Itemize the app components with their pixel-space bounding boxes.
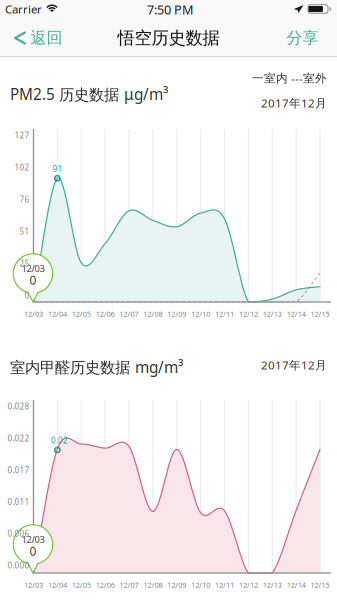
staticText: 51: [19, 226, 29, 237]
staticText: 12/06: [96, 309, 115, 319]
staticText: 76: [19, 194, 29, 205]
staticText: 2017年12月: [261, 357, 327, 373]
staticText: 12/05: [72, 580, 91, 590]
staticText: 0: [29, 543, 36, 559]
staticText: 室内甲醛历史数据 mg/m³: [10, 357, 183, 377]
staticText: 12/08: [143, 309, 162, 319]
staticText: 分享: [286, 28, 318, 48]
staticText: 12/04: [48, 580, 67, 590]
staticText: 12/08: [143, 580, 162, 590]
staticText: 0.006: [7, 528, 29, 539]
staticText: 91: [52, 163, 62, 174]
staticText: 12/09: [167, 580, 186, 590]
staticText: 12/13: [263, 309, 282, 319]
staticText: 12/07: [119, 580, 138, 590]
staticText: 0.017: [7, 465, 29, 476]
staticText: 12/10: [191, 580, 210, 590]
staticText: 0.028: [7, 401, 29, 412]
staticText: 12/14: [287, 580, 306, 590]
staticText: 7:50 PM: [147, 1, 193, 18]
staticText: 25: [19, 258, 29, 269]
staticText: 127: [14, 130, 29, 141]
staticText: 0.022: [7, 433, 29, 444]
staticText: 12/09: [167, 309, 186, 319]
staticText: 一室内 ---室外: [252, 70, 327, 86]
staticText: 12/13: [263, 580, 282, 590]
staticText: 12/12: [239, 580, 258, 590]
staticText: 0: [24, 290, 29, 301]
staticText: 0.000: [7, 560, 29, 571]
staticText: 12/06: [96, 580, 115, 590]
staticText: 12/11: [215, 309, 234, 319]
staticText: 12/07: [119, 309, 138, 319]
staticText: 12/04: [48, 309, 67, 319]
staticText: 2017年12月: [261, 95, 327, 111]
button[interactable]: 分享: [276, 20, 328, 56]
staticText: 0: [29, 272, 36, 288]
staticText: 返回: [30, 28, 62, 48]
staticText: 0.02: [51, 435, 68, 446]
staticText: 102: [14, 162, 29, 173]
staticText: Carrier: [5, 1, 42, 17]
staticText: PM2.5 历史数据 μg/m³: [10, 83, 168, 104]
staticText: 12/03: [24, 580, 43, 590]
staticText: 12/03: [21, 262, 44, 275]
button[interactable]: 返回: [0, 20, 68, 56]
staticText: 12/15: [310, 580, 329, 590]
staticText: 12/14: [287, 309, 306, 319]
staticText: 12/11: [215, 580, 234, 590]
staticText: 12/10: [191, 309, 210, 319]
staticText: 12/05: [72, 309, 91, 319]
staticText: 12/03: [24, 309, 43, 319]
staticText: 0.011: [7, 496, 29, 507]
staticText: 12/15: [310, 309, 329, 319]
staticText: 12/03: [21, 533, 44, 546]
staticText: 12/12: [239, 309, 258, 319]
staticText: 悟空历史数据: [117, 27, 219, 49]
